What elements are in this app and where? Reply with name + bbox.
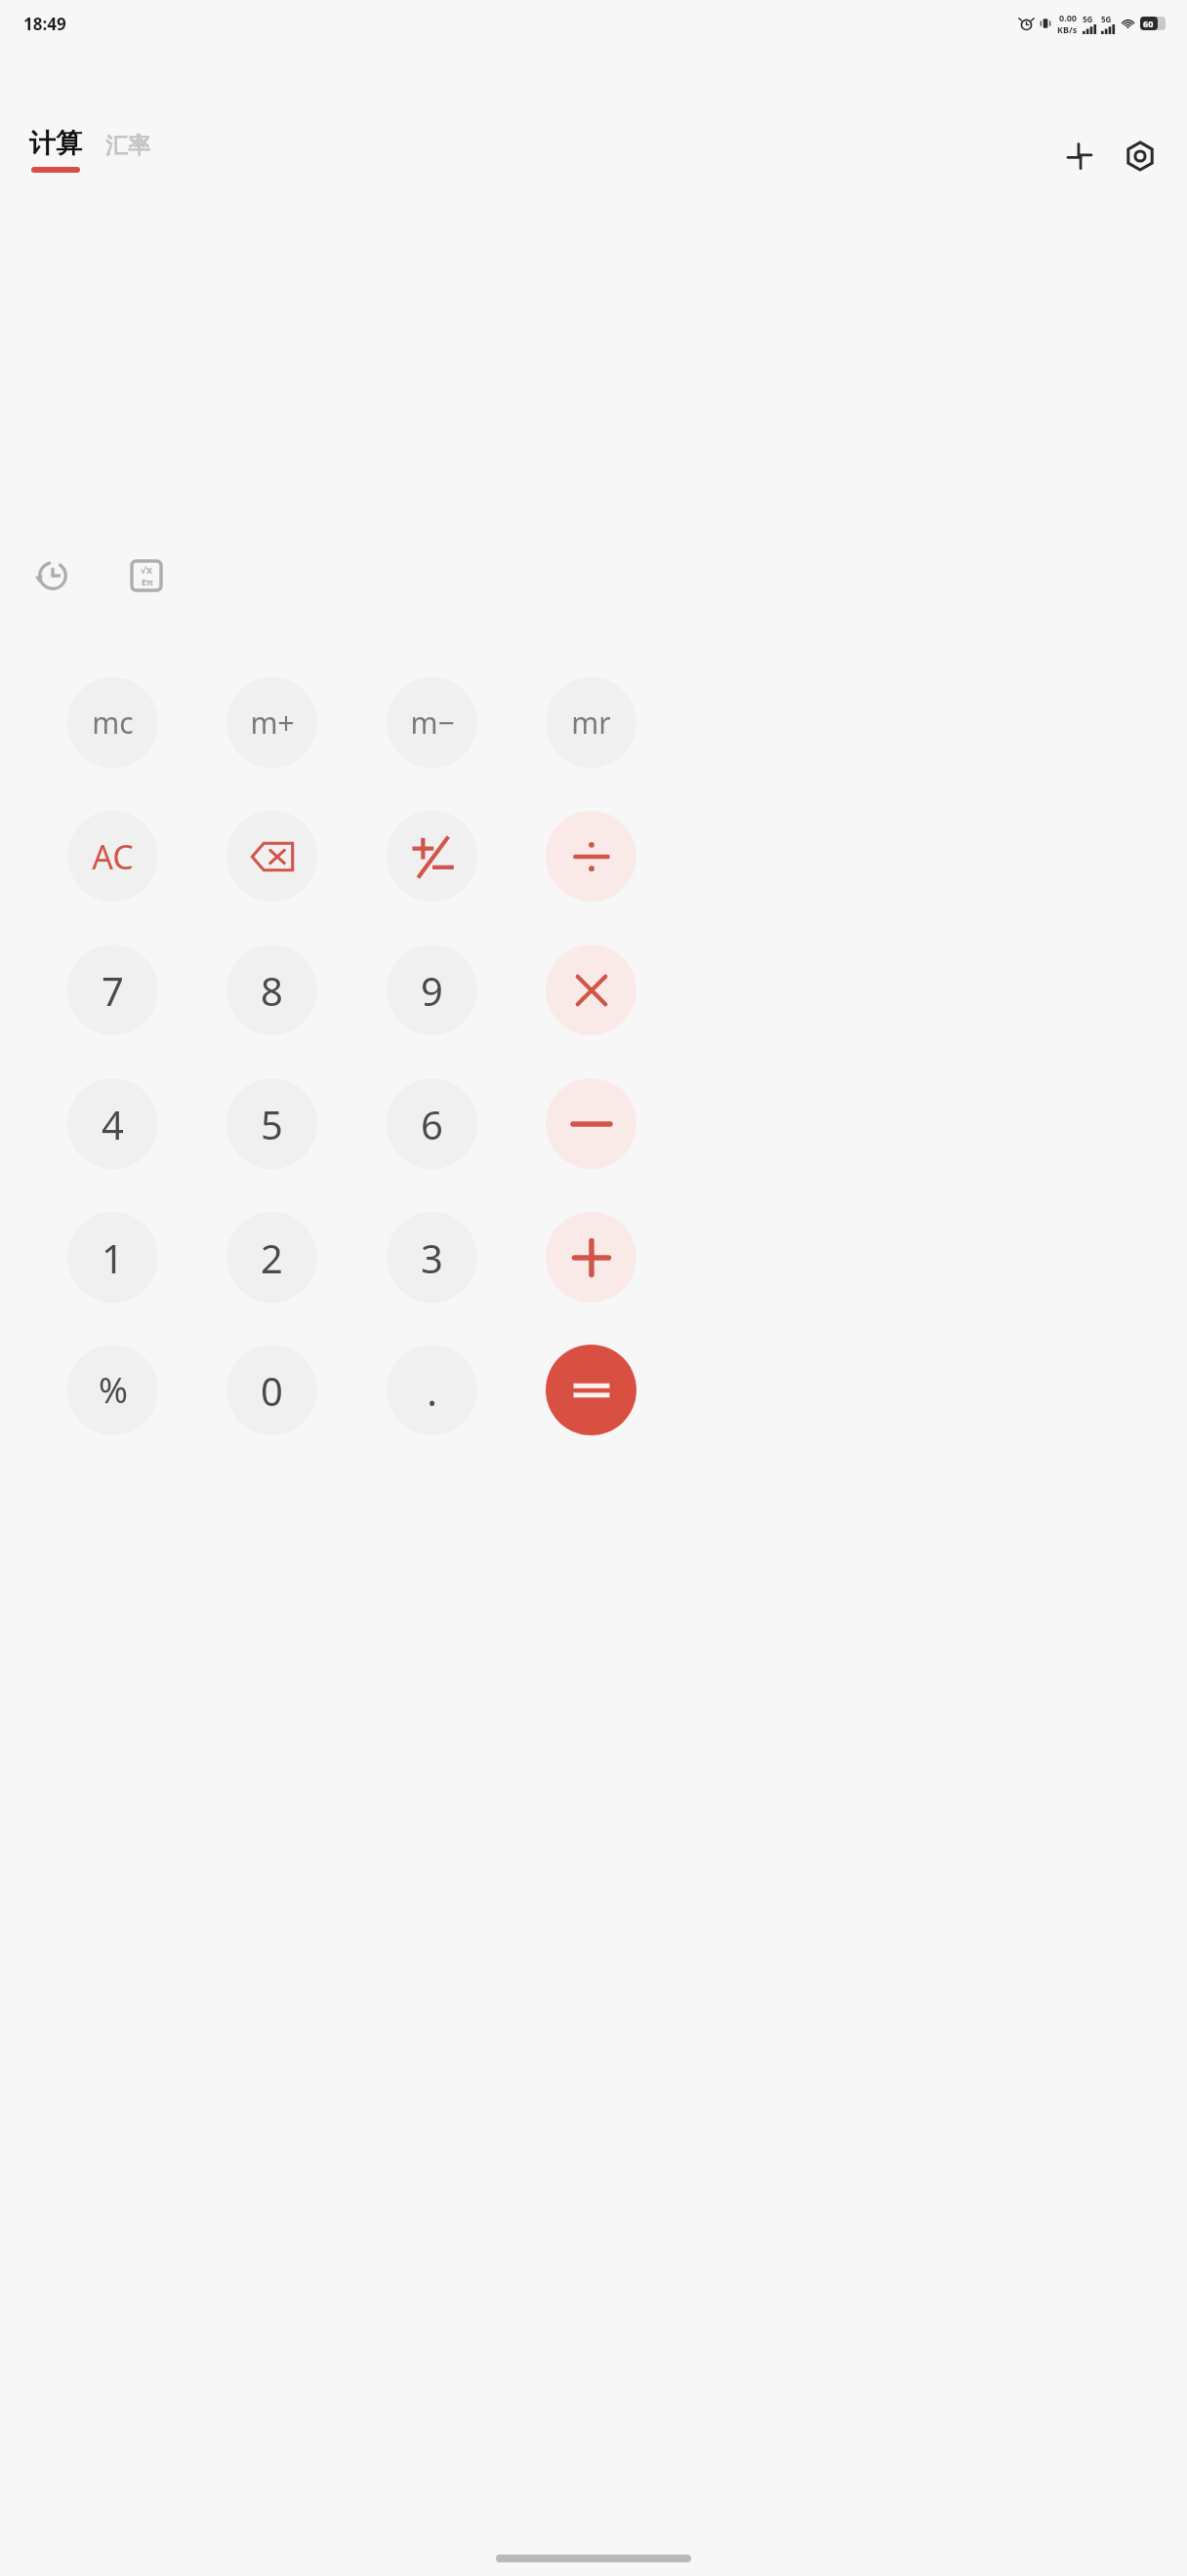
button[interactable]: AC — [67, 811, 158, 902]
staticText: 3 — [421, 1231, 443, 1284]
button[interactable]: 2 — [226, 1212, 317, 1303]
button[interactable]: 5 — [226, 1078, 317, 1169]
staticText: KB/s — [1057, 23, 1078, 35]
staticText: 5G — [1101, 14, 1112, 24]
staticText: 计算 — [29, 127, 82, 160]
button[interactable]: Plus minus — [387, 811, 477, 902]
staticText: 5G — [1083, 14, 1093, 24]
staticText: % — [99, 1366, 128, 1414]
staticText: 5 — [261, 1098, 283, 1150]
staticText: AC — [92, 834, 134, 879]
button[interactable]: Divide — [546, 811, 636, 902]
staticText: mc — [92, 703, 134, 743]
button[interactable]: 3 — [387, 1212, 477, 1303]
button[interactable]: mr — [546, 677, 636, 768]
button[interactable]: Settings — [1117, 133, 1164, 180]
button[interactable]: 1 — [67, 1212, 158, 1303]
staticText: m+ — [250, 703, 295, 743]
button[interactable]: Backspace — [226, 811, 317, 902]
button[interactable]: Multiply — [546, 945, 636, 1035]
button[interactable]: 7 — [67, 945, 158, 1035]
button[interactable]: 9 — [387, 945, 477, 1035]
staticText: 6 — [421, 1098, 443, 1150]
staticText: 18:49 — [23, 13, 66, 35]
button[interactable]: mc — [67, 677, 158, 768]
button[interactable]: Collapse — [1056, 133, 1103, 180]
button[interactable]: Minus — [546, 1078, 636, 1169]
staticText: 9 — [421, 964, 443, 1017]
button[interactable]: Scientific — [119, 548, 174, 603]
button[interactable]: History — [25, 548, 80, 603]
button[interactable]: 6 — [387, 1078, 477, 1169]
staticText: 1 — [102, 1231, 124, 1284]
button[interactable]: 汇率 — [105, 132, 150, 173]
staticText: 8 — [261, 964, 283, 1017]
staticText: mr — [571, 703, 611, 743]
staticText: 汇率 — [105, 132, 150, 160]
button[interactable]: % — [67, 1345, 158, 1435]
staticText: 7 — [102, 964, 124, 1017]
button[interactable]: Plus — [546, 1212, 636, 1303]
staticText: Eπ — [142, 576, 153, 587]
staticText: √X — [141, 564, 153, 576]
button[interactable]: m− — [387, 677, 477, 768]
staticText: 2 — [261, 1231, 283, 1284]
button[interactable]: 计算 — [27, 127, 84, 173]
button[interactable]: m+ — [226, 677, 317, 768]
staticText: 4 — [102, 1098, 124, 1150]
staticText: m− — [410, 703, 455, 743]
button[interactable]: . — [387, 1345, 477, 1435]
staticText: 60 — [1143, 18, 1154, 29]
button[interactable]: 8 — [226, 945, 317, 1035]
button[interactable]: 4 — [67, 1078, 158, 1169]
staticText: . — [427, 1364, 437, 1417]
staticText: 0 — [261, 1364, 283, 1417]
staticText: 0.00 — [1059, 12, 1077, 23]
button[interactable]: Equals — [546, 1345, 636, 1435]
button[interactable]: 0 — [226, 1345, 317, 1435]
